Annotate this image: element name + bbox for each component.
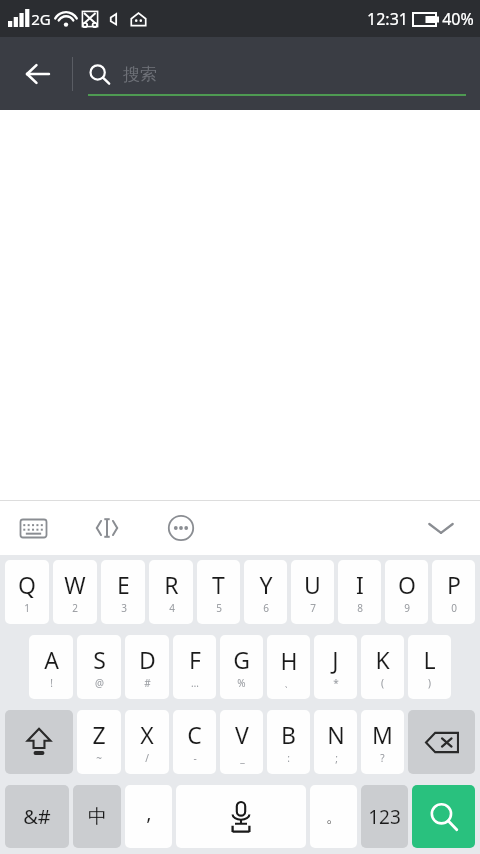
staticText: G [233,644,250,675]
button[interactable]: 。 [310,785,357,848]
staticText: 8 [357,601,363,615]
button[interactable]: Keyboard [10,505,56,551]
staticText: O [398,569,416,600]
button[interactable]: 123 [361,785,408,848]
button[interactable]: J [314,635,357,699]
button[interactable]: F [173,635,216,699]
button[interactable]: Search [412,785,475,848]
button[interactable]: K [361,635,404,699]
button[interactable]: E [101,560,145,624]
staticText: X [140,719,154,750]
staticText: ~ [96,751,102,765]
button[interactable]: Q [5,560,49,624]
button[interactable]: , [125,785,172,848]
button[interactable]: Hide keyboard [418,505,464,551]
staticText: , [146,799,152,826]
staticText: … [191,676,199,690]
staticText: B [281,719,296,750]
staticText: 40% [442,8,474,30]
button[interactable]: Back [14,50,62,98]
staticText: _ [240,751,245,765]
staticText: 1 [24,601,30,615]
staticText: E [117,569,130,600]
staticText: 2G [31,9,51,29]
staticText: 0 [451,601,457,615]
button[interactable]: 搜索 [88,49,466,99]
button[interactable]: D [125,635,169,699]
staticText: 搜索 [123,64,157,85]
button[interactable]: N [314,710,357,774]
button[interactable]: Voice input [176,785,306,848]
staticText: * [333,676,339,690]
button[interactable]: X [125,710,169,774]
staticText: 7 [310,601,316,615]
staticText: D [139,644,156,675]
staticText: 6 [263,601,269,615]
staticText: 中 [88,805,107,829]
button[interactable]: U [291,560,334,624]
button[interactable]: R [149,560,193,624]
staticText: ; [335,751,338,765]
staticText: ! [50,676,53,690]
staticText: / [145,751,149,765]
staticText: W [64,569,86,600]
button[interactable]: T [197,560,240,624]
staticText: N [327,719,345,750]
staticText: F [189,644,201,675]
staticText: ) [428,676,431,690]
button[interactable]: O [385,560,428,624]
staticText: 。 [326,807,342,827]
button[interactable]: L [408,635,451,699]
staticText: Q [18,569,36,600]
staticText: S [93,644,106,675]
staticText: ( [381,676,384,690]
staticText: 5 [216,601,222,615]
staticText: H [280,645,298,676]
button[interactable]: I [338,560,381,624]
staticText: V [235,719,249,750]
button[interactable]: Move cursor [84,505,130,551]
staticText: 12:31 [367,8,408,30]
staticText: P [447,569,461,600]
staticText: J [332,644,339,675]
staticText: Z [92,719,106,750]
staticText: K [375,644,390,675]
button[interactable]: S [77,635,121,699]
button[interactable]: Backspace [408,710,475,774]
staticText: 3 [121,601,127,615]
staticText: : [287,751,290,765]
staticText: M [372,719,393,750]
staticText: &# [23,803,51,830]
button[interactable]: 中 [73,785,121,848]
staticText: 4 [169,601,175,615]
staticText: A [44,644,59,675]
button[interactable]: M [361,710,404,774]
button[interactable]: Shift [5,710,73,774]
staticText: - [193,751,197,765]
staticText: T [212,569,225,600]
button[interactable]: P [432,560,475,624]
button[interactable]: V [220,710,263,774]
staticText: R [164,569,179,600]
button[interactable]: H [267,635,310,699]
button[interactable]: &# [5,785,69,848]
staticText: 123 [368,804,401,830]
staticText: 9 [404,601,410,615]
staticText: Y [259,569,273,600]
staticText: # [144,676,151,690]
button[interactable]: B [267,710,310,774]
staticText: 2 [72,601,78,615]
staticText: C [187,719,202,750]
staticText: U [304,569,321,600]
staticText: ? [380,751,385,765]
button[interactable]: Z [77,710,121,774]
staticText: % [237,676,246,690]
button[interactable]: W [53,560,97,624]
staticText: L [423,644,436,675]
button[interactable]: Y [244,560,287,624]
button[interactable]: More options [158,505,204,551]
button[interactable]: A [29,635,73,699]
button[interactable]: C [173,710,216,774]
button[interactable]: G [220,635,263,699]
staticText: @ [95,676,104,690]
